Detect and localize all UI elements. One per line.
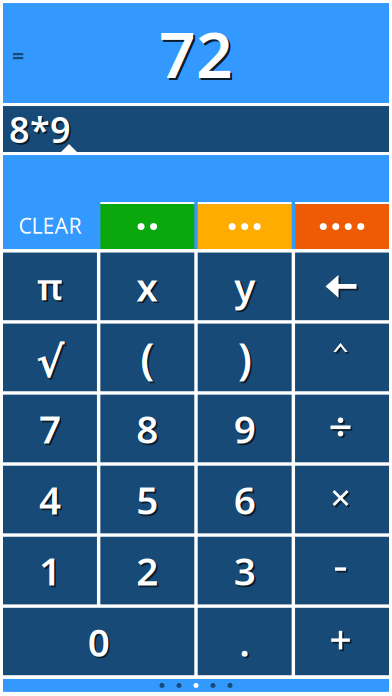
staticText: 5 [136,474,158,525]
button[interactable]: CLEAR [3,202,97,249]
staticText: π [37,262,63,310]
staticText: 0 [89,618,111,669]
button[interactable]: Backspace [295,253,389,320]
staticText: 5 [138,476,160,527]
staticText: . [239,616,250,667]
staticText: CLEAR [18,211,81,240]
staticText: 7 [41,404,63,456]
staticText: 4 [41,476,63,527]
staticText: 72 [161,13,235,98]
button[interactable]: . [198,608,292,675]
button[interactable]: 7 [3,395,97,462]
staticText: x [138,262,160,314]
staticText: y [236,262,257,314]
button[interactable]: ) [198,324,292,391]
button[interactable]: y [198,253,292,320]
button[interactable]: 3 [198,537,292,604]
staticText: 8*9 [11,107,73,155]
button[interactable]: 6 [198,466,292,533]
staticText: π [39,264,65,312]
button[interactable]: x [100,253,194,320]
staticText: x [136,261,158,312]
staticText: 1 [41,547,63,598]
button[interactable]: 4 [3,466,97,533]
button[interactable]: Four decimal places [295,202,389,249]
button[interactable]: 1 [3,537,97,604]
staticText: 2 [138,547,160,598]
button[interactable]: π [3,253,97,320]
staticText: 7 [39,403,61,454]
staticText: 3 [235,547,257,598]
staticText: 8 [138,404,160,456]
staticText: 0 [88,616,110,667]
staticText: ) [238,328,252,387]
button[interactable]: 8 [100,395,194,462]
staticText: 9 [234,403,256,454]
button[interactable]: Multiply [295,466,389,533]
staticText: ( [140,328,154,387]
staticText: √ [38,340,66,388]
staticText: 8 [136,403,158,454]
button[interactable]: ( [100,324,194,391]
button[interactable]: Minus [295,537,389,604]
staticText: 1 [39,545,61,596]
staticText: 8*9 [9,105,71,153]
staticText: ( [142,330,156,388]
button[interactable]: 5 [100,466,194,533]
staticText: 72 [159,11,233,96]
button[interactable]: Two decimal places [100,202,194,249]
button[interactable]: Power [295,324,389,391]
button[interactable]: √ [3,324,97,391]
staticText: 4 [39,474,61,525]
button[interactable]: 0 [3,608,194,675]
staticText: 6 [234,474,256,525]
button[interactable]: Divide [295,395,389,462]
staticText: = [12,41,24,69]
button[interactable]: Plus [295,608,389,675]
button[interactable]: Three decimal places [198,202,292,249]
staticText: . [241,618,252,669]
staticText: 2 [136,545,158,596]
staticText: √ [36,338,64,387]
staticText: 9 [235,404,257,456]
staticText: ) [239,330,253,388]
staticText: 6 [235,476,257,527]
staticText: y [234,261,255,312]
button[interactable]: 9 [198,395,292,462]
staticText: 3 [234,545,256,596]
button[interactable]: 2 [100,537,194,604]
